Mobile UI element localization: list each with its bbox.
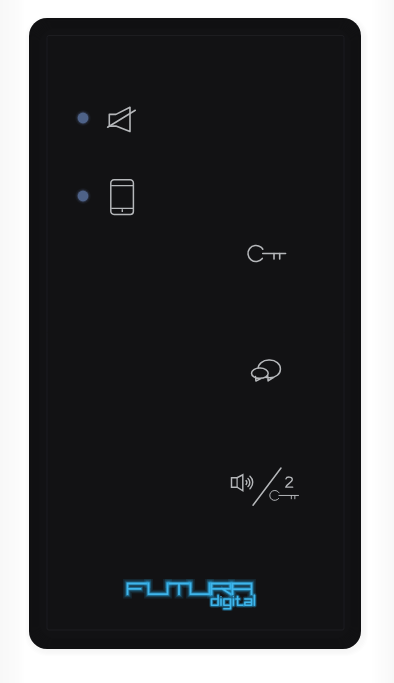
button[interactable]: Speaker and second lock [219, 461, 321, 511]
button[interactable]: Phone call [76, 176, 138, 228]
button[interactable]: Talk [245, 347, 305, 395]
button[interactable]: Mute ringer [76, 101, 138, 153]
button[interactable]: Unlock door [241, 231, 309, 279]
